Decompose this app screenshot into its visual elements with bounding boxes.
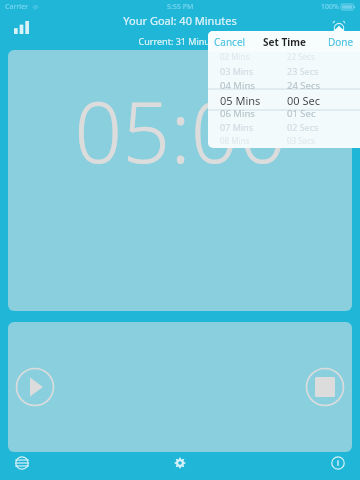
staticText: 08 Mins <box>220 135 250 146</box>
staticText: 23 Secs <box>287 65 319 77</box>
staticText: 24 Secs <box>287 79 321 92</box>
staticText: 01 Sec <box>287 107 316 120</box>
staticText: 100% <box>321 2 339 12</box>
staticText: 00 Sec <box>287 93 320 108</box>
button[interactable]: 05:00 <box>8 50 352 311</box>
button[interactable]: 02 Mins <box>220 52 360 148</box>
button[interactable]: Done <box>325 33 357 51</box>
staticText: 07 Mins <box>220 121 253 133</box>
staticText: Current: 31 Minutes <box>138 35 223 47</box>
staticText: Done <box>328 35 354 49</box>
staticText: Carrier <box>5 2 29 12</box>
staticText: 03 Mins <box>220 65 253 77</box>
button[interactable]: 22 Secs <box>287 52 360 148</box>
button[interactable]: Set alarm <box>326 14 352 40</box>
staticText: Set Time <box>263 35 306 49</box>
staticText: 06 Mins <box>220 107 255 120</box>
staticText: 5:55 PM <box>167 2 194 12</box>
staticText: 05 Mins <box>220 93 261 108</box>
staticText: 22 Secs <box>287 51 315 62</box>
button[interactable]: Log <box>9 450 35 476</box>
staticText: 04 Mins <box>220 79 255 92</box>
button[interactable]: Start <box>15 367 55 407</box>
staticText: Your Goal: 40 Minutes <box>123 13 237 28</box>
button[interactable]: Info <box>325 450 351 476</box>
button[interactable]: Settings <box>167 450 193 476</box>
button[interactable]: Stop <box>305 367 345 407</box>
staticText: Cancel <box>214 35 246 49</box>
staticText: 03 Secs <box>287 135 315 146</box>
staticText: 02 Mins <box>220 51 250 62</box>
staticText: 02 Secs <box>287 121 319 133</box>
button[interactable]: Cancel <box>211 33 249 51</box>
staticText: 05:00 <box>74 73 287 187</box>
button[interactable]: Statistics <box>8 14 34 40</box>
